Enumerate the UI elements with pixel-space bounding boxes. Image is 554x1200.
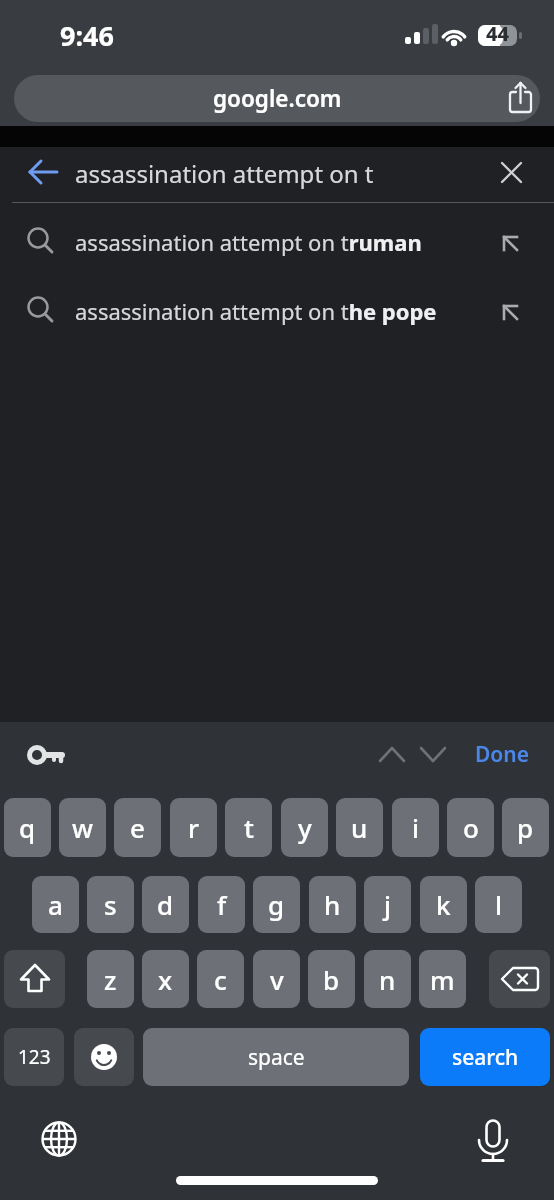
button[interactable]: h bbox=[309, 876, 356, 933]
staticText: 123 bbox=[18, 1044, 51, 1070]
button[interactable]: assassination attempt on truman bbox=[0, 207, 554, 276]
button[interactable]: a bbox=[32, 876, 79, 933]
staticText: p bbox=[517, 810, 534, 845]
button[interactable] bbox=[419, 740, 449, 768]
staticText: o bbox=[463, 810, 479, 845]
button[interactable]: d bbox=[142, 876, 189, 933]
staticText: j bbox=[384, 887, 392, 922]
button[interactable]: i bbox=[392, 798, 439, 857]
button[interactable]: m bbox=[419, 950, 466, 1008]
staticText: d bbox=[157, 887, 174, 922]
button[interactable]: p bbox=[502, 798, 549, 857]
staticText: assassination attempt on the pope bbox=[75, 296, 437, 326]
button[interactable]: t bbox=[225, 798, 272, 857]
button[interactable]: q bbox=[4, 798, 51, 857]
button[interactable]: s bbox=[87, 876, 134, 933]
button[interactable]: x bbox=[142, 950, 189, 1008]
button[interactable]: j bbox=[364, 876, 411, 933]
staticText: c bbox=[214, 962, 227, 997]
button[interactable] bbox=[473, 1119, 515, 1167]
button[interactable]: google.com bbox=[14, 75, 540, 122]
button[interactable] bbox=[378, 740, 408, 768]
button[interactable]: u bbox=[336, 798, 383, 857]
staticText: assassination attempt on truman bbox=[75, 227, 422, 257]
staticText: n bbox=[379, 962, 396, 997]
button[interactable] bbox=[4, 950, 65, 1008]
button[interactable] bbox=[24, 157, 64, 189]
button[interactable]: n bbox=[364, 950, 411, 1008]
button[interactable] bbox=[494, 75, 540, 122]
button[interactable]: 123 bbox=[4, 1028, 64, 1086]
staticText: space bbox=[248, 1043, 305, 1072]
button[interactable] bbox=[24, 740, 68, 770]
staticText: v bbox=[270, 962, 284, 997]
staticText: u bbox=[351, 810, 368, 845]
staticText: assassination attempt on t bbox=[75, 157, 374, 190]
staticText: f bbox=[217, 887, 227, 922]
staticText: z bbox=[104, 962, 117, 997]
button[interactable]: v bbox=[253, 950, 300, 1008]
button[interactable]: z bbox=[87, 950, 134, 1008]
button[interactable]: b bbox=[308, 950, 355, 1008]
button[interactable]: f bbox=[198, 876, 245, 933]
button[interactable]: assassination attempt on the pope bbox=[0, 276, 554, 345]
button[interactable]: k bbox=[420, 876, 467, 933]
button[interactable]: search bbox=[420, 1028, 550, 1086]
staticText: h bbox=[324, 887, 341, 922]
staticText: Done bbox=[475, 740, 530, 769]
staticText: r bbox=[188, 810, 199, 845]
staticText: l bbox=[495, 887, 503, 922]
button[interactable] bbox=[494, 155, 530, 191]
button[interactable]: y bbox=[281, 798, 328, 857]
staticText: x bbox=[158, 962, 173, 997]
staticText: s bbox=[104, 887, 117, 922]
button[interactable]: g bbox=[253, 876, 300, 933]
button[interactable]: Done bbox=[465, 736, 540, 772]
staticText: google.com bbox=[213, 83, 342, 114]
staticText: q bbox=[19, 810, 36, 845]
staticText: y bbox=[298, 810, 312, 845]
button[interactable] bbox=[489, 950, 550, 1008]
button[interactable]: c bbox=[197, 950, 244, 1008]
button[interactable] bbox=[74, 1028, 134, 1086]
button[interactable]: space bbox=[143, 1028, 409, 1086]
staticText: g bbox=[268, 887, 285, 922]
staticText: a bbox=[48, 887, 63, 922]
staticText: e bbox=[130, 810, 145, 845]
staticText: k bbox=[436, 887, 451, 922]
button[interactable]: r bbox=[170, 798, 217, 857]
staticText: 44 bbox=[486, 20, 510, 47]
staticText: t bbox=[244, 810, 254, 845]
staticText: search bbox=[452, 1043, 519, 1072]
staticText: m bbox=[430, 962, 455, 997]
button[interactable]: w bbox=[59, 798, 106, 857]
staticText: b bbox=[323, 962, 340, 997]
staticText: i bbox=[412, 810, 420, 845]
button[interactable]: l bbox=[475, 876, 522, 933]
staticText: 9:46 bbox=[60, 17, 114, 53]
staticText: w bbox=[72, 810, 93, 845]
button[interactable]: o bbox=[447, 798, 494, 857]
button[interactable]: e bbox=[114, 798, 161, 857]
button[interactable] bbox=[40, 1122, 78, 1160]
